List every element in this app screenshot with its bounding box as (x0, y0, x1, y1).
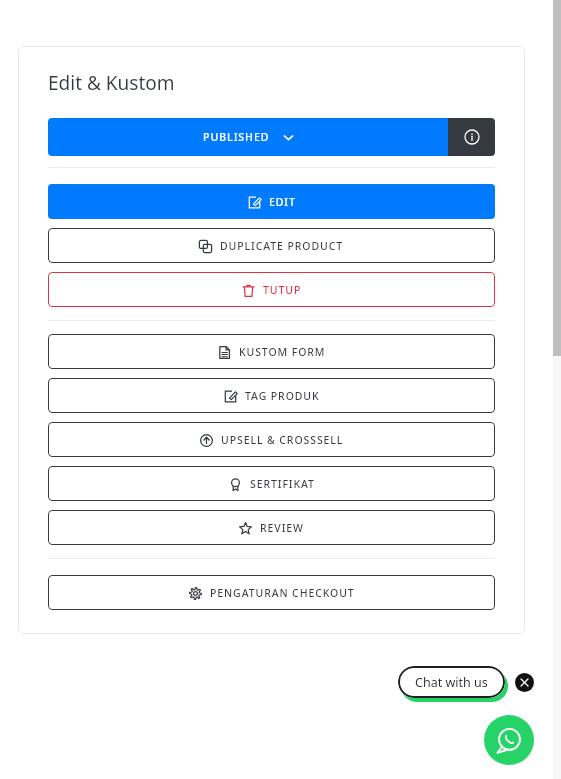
button[interactable]: KUSTOM FORM (48, 334, 495, 369)
button[interactable]: PENGATURAN CHECKOUT (48, 575, 495, 610)
staticText: Edit & Kustom (48, 70, 175, 96)
button[interactable]: EDIT (48, 184, 495, 219)
staticText: KUSTOM FORM (239, 345, 326, 359)
button[interactable]: UPSELL & CROSSSELL (48, 422, 495, 457)
staticText: REVIEW (260, 521, 304, 535)
staticText: TAG PRODUK (245, 389, 320, 403)
button[interactable]: DUPLICATE PRODUCT (48, 228, 495, 263)
staticText: SERTIFIKAT (250, 477, 315, 491)
button[interactable]: Information (448, 118, 495, 156)
button[interactable]: REVIEW (48, 510, 495, 545)
staticText: UPSELL & CROSSSELL (221, 433, 344, 447)
staticText: Chat with us (415, 674, 488, 691)
staticText: DUPLICATE PRODUCT (220, 239, 344, 253)
button[interactable]: TUTUP (48, 272, 495, 307)
button[interactable]: TAG PRODUK (48, 378, 495, 413)
button[interactable]: WhatsApp chat (484, 715, 534, 765)
button[interactable]: Close chat (515, 673, 534, 692)
staticText: EDIT (269, 195, 296, 209)
staticText: PUBLISHED (203, 130, 270, 144)
staticText: PENGATURAN CHECKOUT (210, 586, 355, 600)
button[interactable]: PUBLISHED (48, 118, 448, 156)
staticText: TUTUP (263, 283, 302, 297)
button[interactable]: Chat with us (398, 666, 505, 698)
button[interactable]: SERTIFIKAT (48, 466, 495, 501)
